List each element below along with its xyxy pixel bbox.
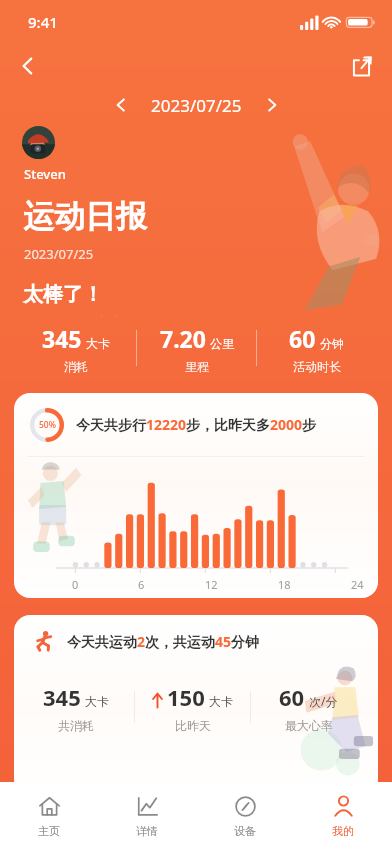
staticText: 6 [138,577,145,592]
staticText: 150 [167,682,205,712]
staticText: 设备 [234,824,256,838]
button[interactable]: 2023/07/25 [139,91,254,120]
staticText: 345 [42,323,82,354]
staticText: 2023/07/25 [24,245,94,263]
staticText: Steven [24,165,66,183]
staticText: 0 [72,577,79,592]
staticText: 消耗 [64,359,88,374]
staticText: 12 [205,577,218,592]
staticText: 太棒了！ [23,282,103,307]
staticText: 主页 [38,824,60,838]
button[interactable]: 设备 [196,782,294,850]
staticText: 18 [278,577,291,592]
staticText: 活动时长 [293,359,341,374]
button[interactable]: Previous day [103,88,139,122]
staticText: 9:41 [28,12,58,32]
staticText: 今天共运动2次，共运动45分钟 [67,632,260,651]
staticText: 24 [351,577,364,592]
button[interactable]: Next day [254,88,290,122]
staticText: 分钟 [320,336,344,351]
staticText: 50% [39,419,56,431]
button[interactable]: 主页 [0,782,98,850]
staticText: 比昨天 [175,718,211,733]
button[interactable]: Share [340,45,382,87]
staticText: 我的 [332,824,354,838]
staticText: 345 [43,682,81,712]
staticText: 里程 [185,359,209,374]
staticText: 运动日报 [23,197,147,236]
staticText: 大卡 [209,694,233,709]
staticText: 2023/07/25 [151,94,242,117]
staticText: 最大心率 [285,718,333,733]
staticText: 次/分 [309,693,338,709]
button[interactable]: 今天共运动2次，共运动45分钟 [14,615,378,795]
button[interactable]: 详情 [98,782,196,850]
staticText: 今天的目标已完成 [24,315,120,317]
staticText: 详情 [136,824,158,838]
button[interactable]: Back [7,45,49,87]
button[interactable]: Profile photo [22,126,55,159]
button[interactable]: 我的 [294,782,392,850]
staticText: 大卡 [86,336,110,351]
staticText: 60 [279,682,305,712]
staticText: 7.20 [160,323,206,354]
staticText: 共消耗 [58,718,94,733]
staticText: 大卡 [85,694,109,709]
staticText: 60 [289,323,316,354]
staticText: 今天共步行12220步，比昨天多2000步 [76,415,317,434]
button[interactable]: 50% [14,393,378,598]
staticText: 公里 [210,336,234,351]
